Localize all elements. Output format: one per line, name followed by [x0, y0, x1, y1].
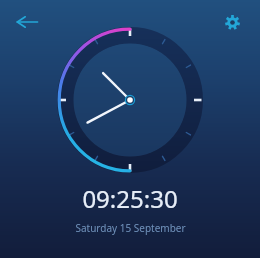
button[interactable]: Back	[10, 5, 44, 39]
button[interactable]: Settings	[216, 6, 248, 38]
staticText: Saturday 15 September	[75, 221, 186, 235]
staticText: 09:25:30	[82, 182, 178, 215]
